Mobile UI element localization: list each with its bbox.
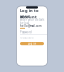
staticText: account	[20, 14, 37, 19]
staticText: Password	[20, 30, 32, 34]
staticText: Enter your details below	[20, 18, 44, 25]
staticText: Log in to your	[20, 8, 39, 18]
button[interactable]: Log in	[20, 42, 44, 45]
staticText: hello@mail.com	[20, 24, 41, 28]
staticText: Forgot password?	[20, 37, 34, 39]
staticText: Log in	[27, 42, 36, 45]
